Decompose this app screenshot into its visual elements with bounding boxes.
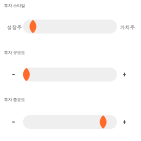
- button[interactable]: 투자 스타일 슬라이더: [23, 19, 117, 33]
- button[interactable]: 투자 중요도 줄이기: [8, 116, 18, 128]
- button[interactable]: 투자 규모 슬라이더: [23, 67, 117, 81]
- button[interactable]: 투자 규모 줄이기: [8, 68, 18, 80]
- button[interactable]: 투자 중요도 늘리기: [119, 116, 129, 128]
- staticText: 투자 규모도: [4, 50, 25, 55]
- button[interactable]: 투자 중요도 슬라이더: [23, 115, 117, 129]
- button[interactable]: 투자 규모 늘리기: [119, 68, 129, 80]
- staticText: 성장주: [7, 24, 22, 30]
- staticText: 투자 중요도: [4, 97, 25, 102]
- staticText: 투자 스타일: [4, 3, 25, 8]
- staticText: 가치주: [120, 24, 135, 30]
